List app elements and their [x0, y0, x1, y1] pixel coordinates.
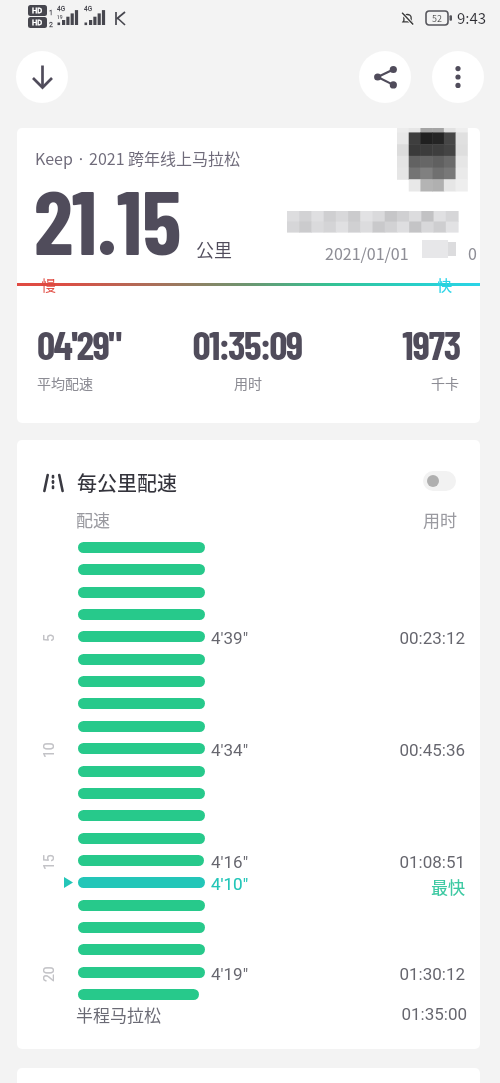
- staticText: 2: [49, 21, 53, 29]
- staticText: 20: [41, 966, 57, 982]
- staticText: 用时: [167, 373, 329, 393]
- staticText: 19: [57, 14, 63, 20]
- staticText: 配速: [76, 507, 110, 532]
- staticText: Keep · 2021 跨年线上马拉松: [35, 146, 241, 169]
- staticText: 52: [432, 12, 442, 25]
- staticText: 4'34": [211, 740, 249, 760]
- staticText: 10: [41, 742, 57, 758]
- staticText: 2021/01/01: [325, 241, 409, 264]
- staticText: 快: [437, 274, 453, 296]
- staticText: 01:08:51: [345, 852, 465, 872]
- staticText: 4'10": [211, 874, 249, 894]
- button[interactable]: Back: [16, 51, 68, 103]
- staticText: 用时: [397, 507, 457, 532]
- staticText: 01:35:00: [347, 1004, 467, 1024]
- staticText: 5: [41, 634, 57, 642]
- staticText: 半程马拉松: [76, 1002, 161, 1027]
- staticText: 01:35:09: [166, 320, 328, 368]
- button[interactable]: More options: [432, 51, 484, 103]
- staticText: 00:23:12: [345, 628, 465, 648]
- staticText: 04'29": [37, 320, 121, 368]
- button[interactable]: Share: [359, 51, 411, 103]
- staticText: 21.15: [34, 166, 182, 273]
- staticText: 1: [49, 9, 53, 17]
- staticText: 公里: [196, 236, 232, 262]
- staticText: 15: [41, 854, 57, 870]
- button[interactable]: Toggle pace chart: [423, 471, 456, 491]
- staticText: 千卡: [297, 373, 459, 393]
- staticText: 4'39": [211, 628, 249, 648]
- staticText: 慢: [41, 274, 57, 296]
- staticText: HD: [32, 18, 43, 27]
- staticText: 0: [468, 241, 477, 264]
- staticText: 01:30:12: [345, 964, 465, 984]
- staticText: 4'19": [211, 964, 249, 984]
- staticText: 平均配速: [37, 373, 93, 393]
- staticText: 9:43: [457, 7, 487, 29]
- staticText: 每公里配速: [77, 468, 177, 497]
- staticText: HD: [32, 6, 43, 15]
- staticText: 4G: [57, 5, 66, 13]
- staticText: 最快: [345, 874, 465, 899]
- staticText: 4G: [84, 5, 93, 13]
- staticText: 1973: [298, 320, 460, 368]
- staticText: 4'16": [211, 852, 249, 872]
- staticText: 00:45:36: [345, 740, 465, 760]
